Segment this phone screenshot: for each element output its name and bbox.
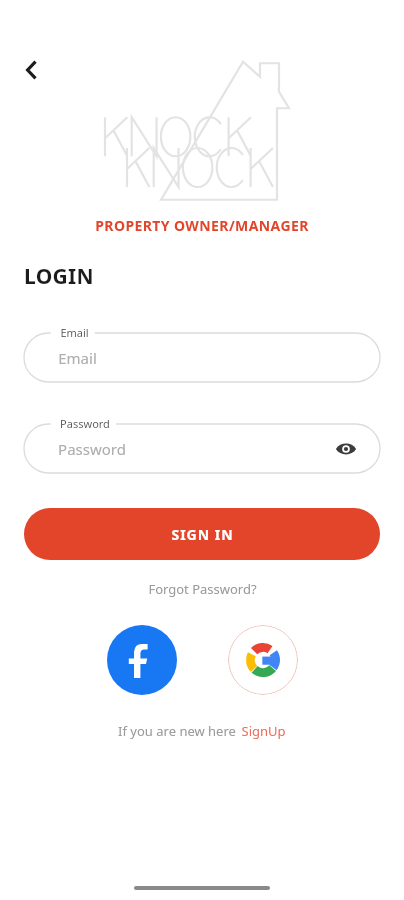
button[interactable]: Show password — [332, 435, 360, 463]
staticText: Email — [60, 325, 89, 340]
button[interactable]: Sign in with Facebook — [107, 625, 177, 695]
button[interactable]: SignUp — [241, 722, 286, 740]
button[interactable]: Password — [24, 424, 380, 473]
staticText: SIGN IN — [171, 525, 234, 544]
button[interactable]: Forgot Password? — [140, 576, 265, 602]
staticText: Forgot Password? — [148, 580, 257, 598]
staticText: PROPERTY OWNER/MANAGER — [95, 216, 309, 235]
staticText: If you are new here — [118, 722, 236, 740]
button[interactable]: Email — [24, 333, 380, 382]
button[interactable]: Back — [10, 48, 54, 92]
button[interactable]: SIGN IN — [24, 508, 380, 560]
staticText: Password — [58, 439, 126, 459]
staticText: LOGIN — [24, 262, 94, 291]
staticText: Email — [58, 348, 97, 368]
staticText: SignUp — [241, 722, 286, 740]
button[interactable]: Sign in with Google — [228, 625, 298, 695]
staticText: Password — [60, 416, 110, 431]
